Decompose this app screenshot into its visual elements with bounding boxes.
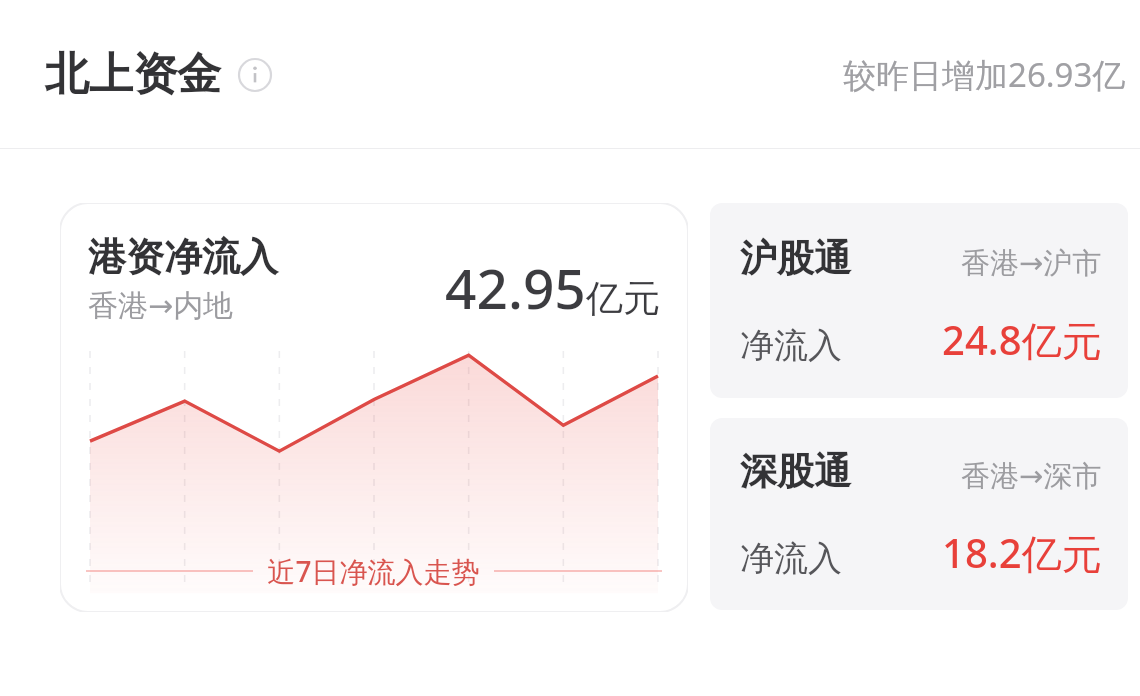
button[interactable]: 沪股通	[710, 203, 1128, 398]
button[interactable]: 说明	[237, 57, 273, 93]
staticText: 香港→深市	[961, 458, 1102, 495]
staticText: 港资净流入	[88, 233, 278, 281]
button[interactable]: 北上资金	[45, 47, 273, 102]
staticText: 较昨日增加26.93亿	[843, 52, 1126, 97]
staticText: 沪股通	[740, 235, 851, 282]
staticText: 深股通	[740, 448, 851, 495]
staticText: 净流入	[740, 537, 842, 580]
staticText: 近7日净流入走势	[267, 552, 480, 590]
staticText: 42.95	[445, 250, 586, 325]
staticText: 净流入	[740, 324, 842, 367]
staticText: 18.2亿元	[942, 525, 1102, 580]
staticText: 香港→内地	[88, 287, 234, 325]
staticText: 24.8亿元	[942, 312, 1102, 367]
staticText: 香港→沪市	[961, 245, 1102, 282]
staticText: 亿元	[586, 275, 660, 322]
button[interactable]: 港资净流入	[60, 203, 688, 612]
button[interactable]: 深股通	[710, 418, 1128, 610]
staticText: 北上资金	[45, 47, 221, 102]
